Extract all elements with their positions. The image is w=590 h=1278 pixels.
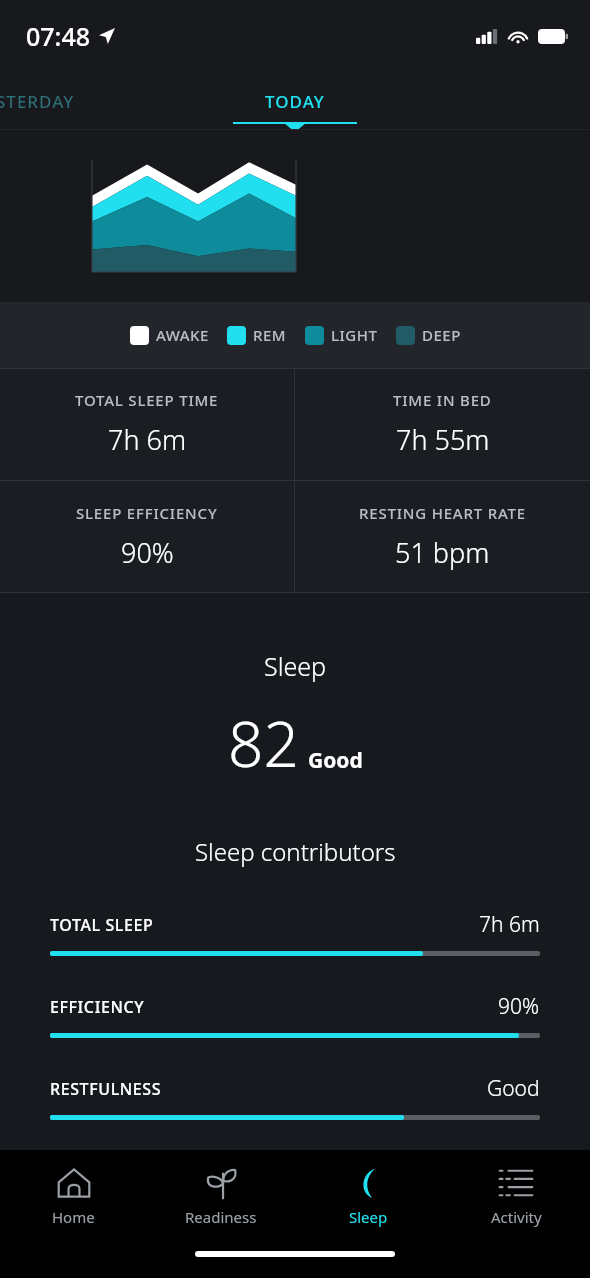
button[interactable]: Sleep <box>294 1150 442 1242</box>
button[interactable]: REM SLEEP <box>50 1156 540 1185</box>
button[interactable]: RESTING HEART RATE <box>295 481 590 593</box>
staticText: 51 bpm <box>395 534 490 571</box>
staticText: 1h 30m. 21% <box>415 1156 540 1185</box>
button[interactable]: Activity <box>442 1150 590 1242</box>
staticText: RESTING HEART RATE <box>359 503 526 523</box>
button[interactable]: Readiness <box>147 1150 294 1242</box>
staticText: Home <box>52 1207 95 1227</box>
button[interactable]: EFFICIENCY <box>0 992 590 1074</box>
staticText: Sleep <box>264 649 327 683</box>
staticText: 07:48 <box>26 19 91 53</box>
staticText: Activity <box>491 1207 542 1227</box>
staticText: Good <box>308 746 363 775</box>
staticText: SLEEP EFFICIENCY <box>76 503 218 523</box>
staticText: DEEP <box>422 325 461 345</box>
staticText: TOTAL SLEEP TIME <box>75 390 219 410</box>
button[interactable]: TODAY <box>205 72 385 130</box>
staticText: REM <box>253 325 287 345</box>
button[interactable]: RESTFULNESS <box>0 1074 590 1156</box>
staticText: 7h 6m <box>479 910 540 939</box>
staticText: RESTFULNESS <box>50 1078 162 1100</box>
staticText: TIME IN BED <box>393 390 492 410</box>
button[interactable]: TOTAL SLEEP <box>0 910 590 992</box>
button[interactable]: TIME IN BED <box>295 368 590 480</box>
staticText: EFFICIENCY <box>50 996 145 1018</box>
staticText: 90% <box>498 992 540 1021</box>
staticText: 90% <box>121 534 174 571</box>
staticText: 7h 6m <box>108 421 187 458</box>
staticText: Readiness <box>185 1207 257 1227</box>
staticText: TOTAL SLEEP <box>50 914 154 936</box>
staticText: Good <box>487 1074 540 1103</box>
staticText: Sleep contributors <box>195 835 396 868</box>
button[interactable]: SLEEP EFFICIENCY <box>0 481 294 593</box>
staticText: TODAY <box>265 90 325 113</box>
staticText: 7h 55m <box>396 421 490 458</box>
button[interactable]: TOTAL SLEEP TIME <box>0 368 294 480</box>
staticText: 82 <box>228 701 299 785</box>
button[interactable]: STERDAY <box>0 72 160 130</box>
staticText: LIGHT <box>331 325 378 345</box>
staticText: REM SLEEP <box>50 1160 139 1182</box>
staticText: AWAKE <box>156 325 209 345</box>
button[interactable]: Home <box>0 1150 147 1242</box>
staticText: Sleep <box>349 1207 388 1227</box>
staticText: STERDAY <box>0 90 75 113</box>
